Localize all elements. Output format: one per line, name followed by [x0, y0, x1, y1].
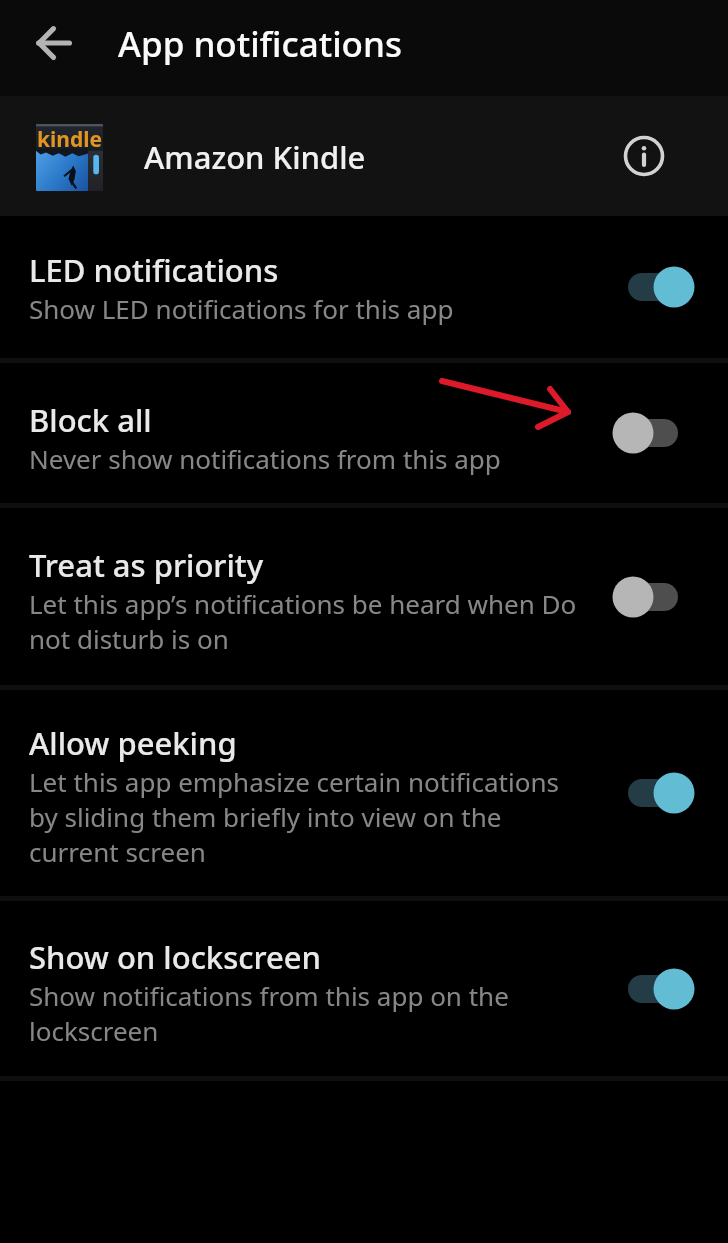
button[interactable]: Treat as priority: [0, 508, 728, 685]
staticText: current screen: [29, 834, 206, 869]
staticText: Show on lockscreen: [29, 936, 321, 978]
button[interactable]: kindle: [0, 96, 728, 216]
staticText: Let this app’s notifications be heard wh…: [29, 586, 577, 621]
button[interactable]: Show on lockscreen: [592, 901, 728, 1076]
staticText: Let this app emphasize certain notificat…: [29, 764, 559, 799]
staticText: Allow peeking: [29, 722, 237, 764]
staticText: by sliding them briefly into view on the: [29, 799, 502, 834]
staticText: kindle: [36, 125, 103, 154]
staticText: LED notifications: [29, 249, 279, 291]
button[interactable]: LED notifications: [0, 216, 728, 358]
staticText: Block all: [29, 399, 152, 441]
staticText: Treat as priority: [29, 544, 264, 586]
button[interactable]: LED notifications: [592, 216, 728, 358]
button[interactable]: Treat as priority: [592, 508, 728, 685]
staticText: Show LED notifications for this app: [29, 291, 454, 326]
button[interactable]: App info: [604, 116, 684, 196]
button[interactable]: Block all: [592, 363, 728, 503]
staticText: Amazon Kindle: [144, 136, 366, 178]
staticText: not disturb is on: [29, 621, 229, 656]
button[interactable]: Allow peeking: [0, 690, 728, 896]
button[interactable]: Show on lockscreen: [0, 901, 728, 1076]
button[interactable]: Block all: [0, 363, 728, 503]
staticText: Show notifications from this app on the: [29, 978, 509, 1013]
staticText: Never show notifications from this app: [29, 441, 501, 476]
staticText: lockscreen: [29, 1013, 159, 1048]
button[interactable]: Allow peeking: [592, 690, 728, 896]
staticText: App notifications: [118, 20, 402, 68]
button[interactable]: Back: [0, 0, 108, 96]
